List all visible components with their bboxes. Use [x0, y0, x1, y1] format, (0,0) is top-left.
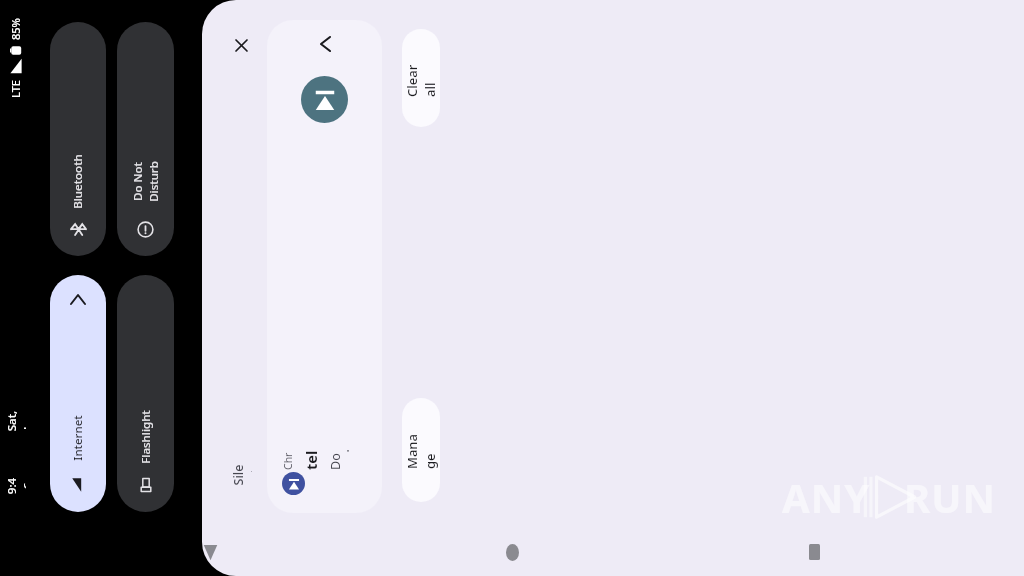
button[interactable]: Home	[494, 534, 530, 570]
staticText: Bluetooth	[70, 154, 86, 209]
button[interactable]: Internet	[50, 275, 106, 512]
staticText: ANY	[782, 470, 871, 524]
staticText: Sat, Jun 21	[4, 410, 26, 432]
button[interactable]: Clear all	[402, 29, 440, 127]
staticText: 9:46	[4, 475, 26, 497]
button[interactable]: Bluetooth	[50, 22, 106, 256]
staticText: RUN	[904, 470, 996, 524]
staticText: Internet	[70, 415, 86, 461]
staticText: Silent	[230, 464, 252, 486]
button[interactable]: Do Not Disturb	[117, 22, 174, 256]
staticText: Manage	[403, 431, 439, 469]
staticText: Do Not Disturb	[130, 153, 162, 210]
staticText: Download complete • 132.94 MB	[327, 448, 349, 470]
staticText: Chromium • 1m	[281, 452, 299, 470]
button[interactable]: Open download	[301, 76, 348, 123]
button[interactable]: Back	[192, 534, 228, 570]
button[interactable]: Expand notification	[311, 30, 339, 58]
button[interactable]: Flashlight	[117, 275, 174, 512]
button[interactable]: Dismiss notification group	[228, 32, 254, 58]
button[interactable]: Expand notification	[267, 20, 382, 513]
staticText: 85%	[8, 18, 23, 40]
staticText: LTE	[8, 80, 23, 98]
staticText: Clear all	[403, 59, 439, 97]
button[interactable]: Manage	[402, 398, 440, 502]
staticText: Flashlight	[138, 410, 154, 464]
button[interactable]: Recent apps	[796, 534, 832, 570]
staticText: telegram.apk	[301, 446, 325, 470]
